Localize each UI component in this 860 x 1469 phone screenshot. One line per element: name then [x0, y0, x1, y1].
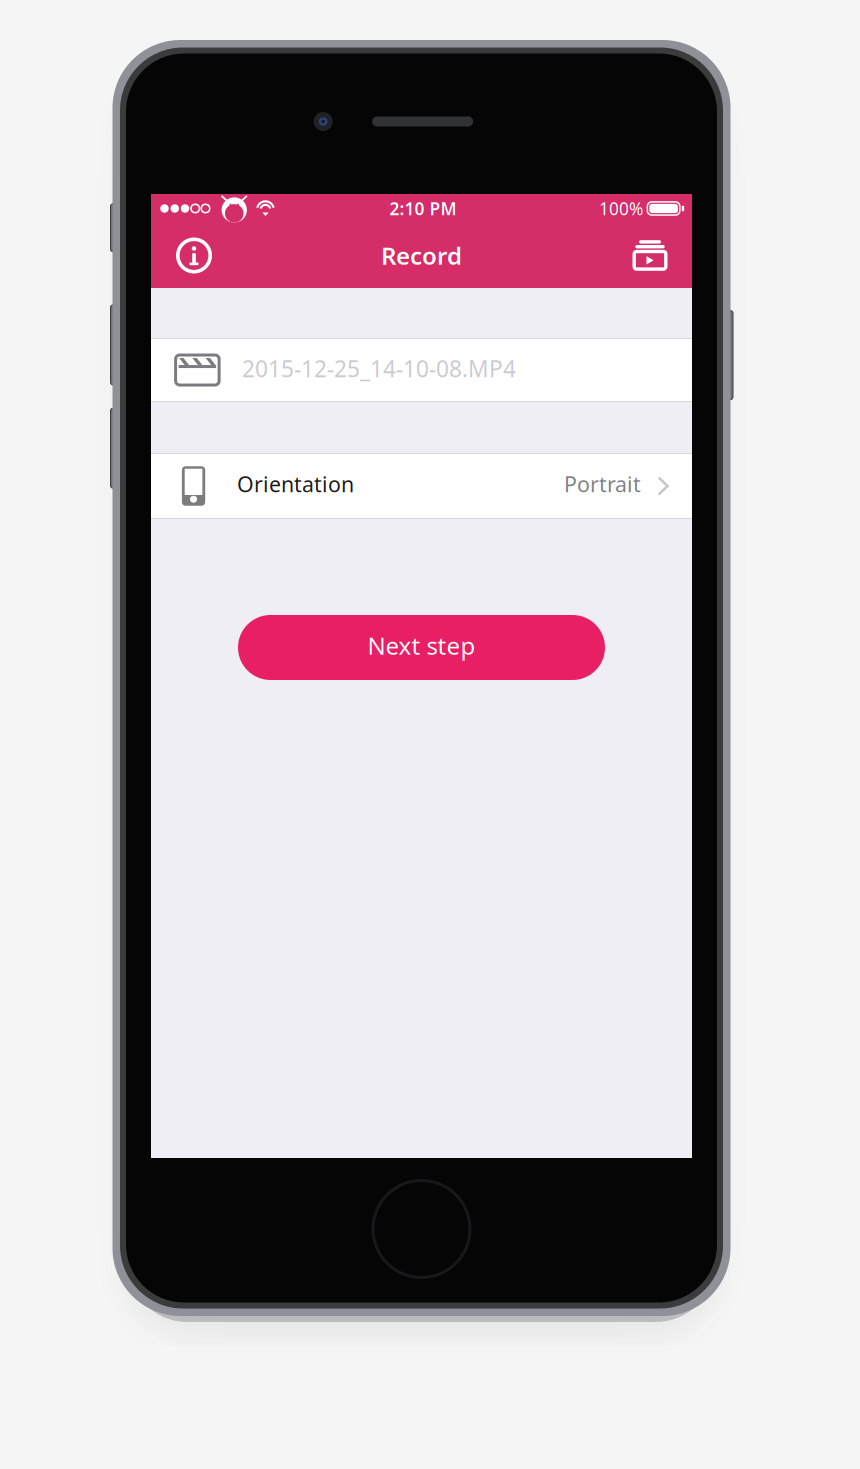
- staticText: 2:10 PM: [389, 197, 456, 220]
- staticText: Record: [381, 240, 462, 271]
- button[interactable]: Video library: [619, 225, 681, 285]
- button[interactable]: Orientation: [151, 454, 692, 518]
- staticText: 2015-12-25_14-10-08.MP4: [242, 353, 516, 383]
- staticText: 100%: [599, 197, 643, 220]
- staticText: Portrait: [564, 470, 641, 498]
- button[interactable]: Next step: [238, 615, 605, 680]
- staticText: Orientation: [237, 470, 354, 498]
- button[interactable]: Info: [163, 225, 225, 285]
- staticText: Next step: [367, 630, 475, 661]
